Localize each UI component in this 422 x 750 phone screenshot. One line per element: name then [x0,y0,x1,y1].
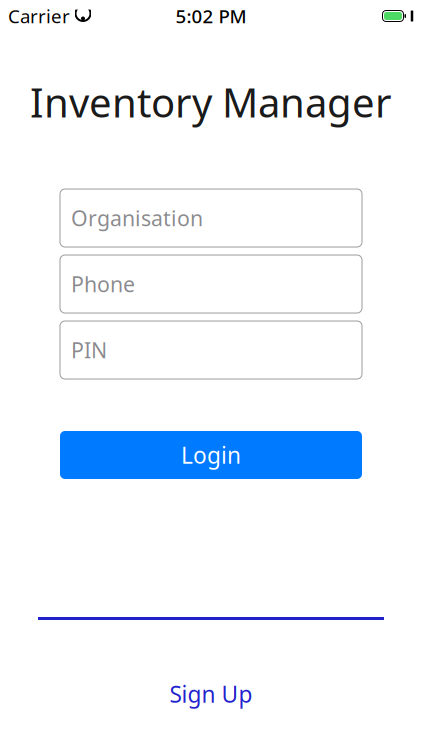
button[interactable]: Sign Up [0,682,422,706]
staticText: Carrier [8,4,70,28]
staticText: Login [181,440,241,470]
staticText: Inventory Manager [30,75,392,128]
staticText: 5:02 PM [175,4,246,28]
button[interactable]: Phone [60,255,362,313]
staticText: PIN [71,336,107,364]
button[interactable]: PIN [60,321,362,379]
button[interactable]: Login [60,431,362,479]
staticText: Sign Up [169,679,252,709]
button[interactable]: Organisation [60,189,362,247]
staticText: Phone [71,270,135,298]
staticText: Organisation [71,204,203,232]
